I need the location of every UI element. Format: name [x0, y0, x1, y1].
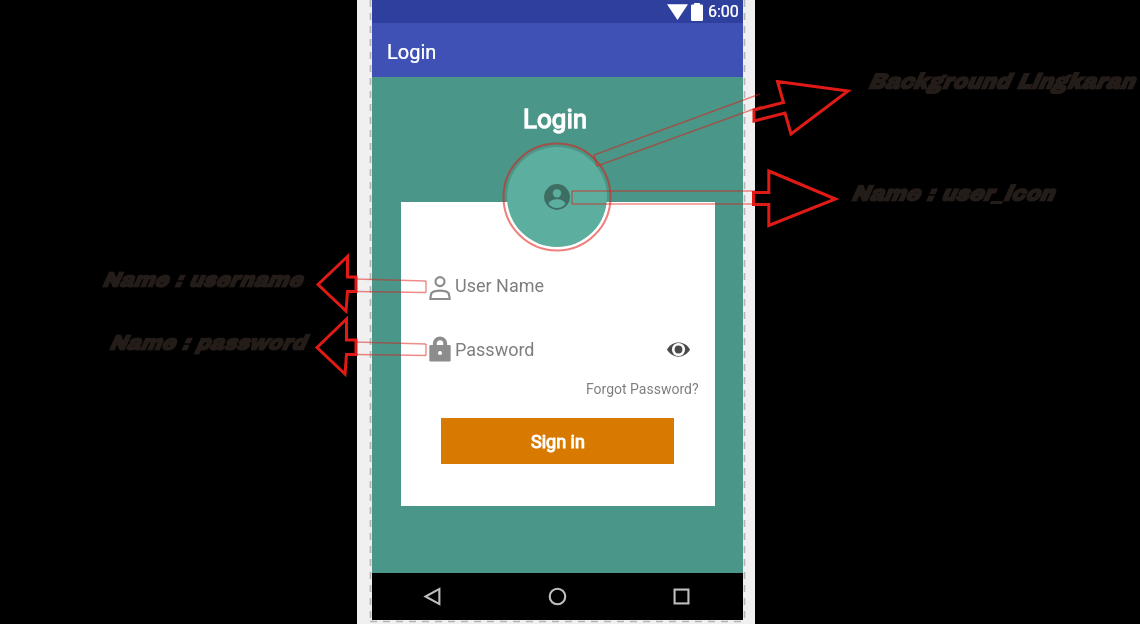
staticText: Name : username	[101, 269, 301, 292]
staticText: Sign in	[531, 431, 585, 452]
staticText: Name : password	[108, 332, 305, 355]
button[interactable]: Back	[372, 573, 495, 620]
button[interactable]: Recents	[619, 573, 743, 620]
staticText: 6:00	[708, 2, 739, 21]
staticText: Background Lingkaran	[867, 70, 1133, 93]
staticText: Forgot Password?	[586, 381, 699, 397]
button[interactable]: Home	[495, 573, 619, 620]
staticText: Name : user_icon	[850, 182, 1053, 206]
button[interactable]: Sign in	[441, 418, 674, 464]
staticText: Login	[387, 40, 437, 63]
button[interactable]: User icon	[507, 147, 607, 247]
button[interactable]: Show password	[665, 336, 691, 362]
staticText: Login	[523, 104, 588, 134]
staticText: Password	[455, 339, 535, 360]
button[interactable]: Password	[401, 328, 715, 370]
button[interactable]: Forgot Password?	[586, 378, 699, 400]
staticText: User Name	[455, 275, 545, 296]
button[interactable]: User Name	[401, 267, 715, 309]
